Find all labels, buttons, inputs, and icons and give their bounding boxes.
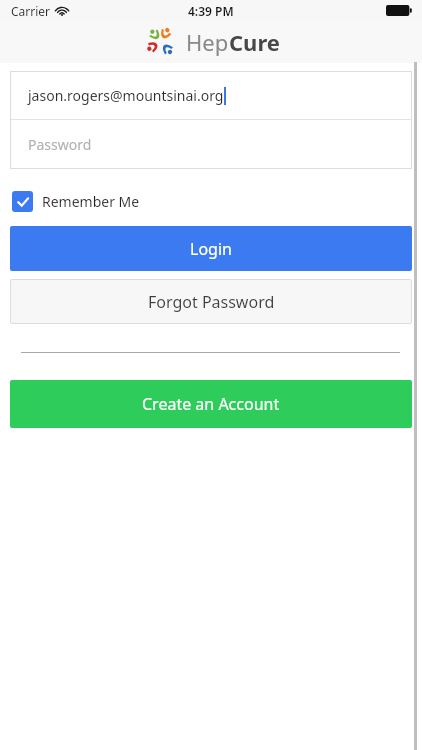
button[interactable]: Password [10,120,412,169]
button[interactable]: Forgot Password [10,279,412,324]
button[interactable]: Remember Me [12,189,150,214]
staticText: Create an Account [142,393,280,415]
staticText: Carrier [11,3,51,19]
staticText: jason.rogers@mountsinai.org [28,86,224,105]
staticText: Cure [229,27,280,57]
button[interactable]: Login [10,226,412,271]
button[interactable]: jason.rogers@mountsinai.org [10,71,412,119]
staticText: 4:39 PM [188,3,234,19]
staticText: Password [28,135,92,154]
button[interactable]: Create an Account [10,380,412,428]
staticText: Login [190,238,232,260]
staticText: Remember Me [42,192,140,211]
staticText: Hep [186,27,229,57]
staticText: Forgot Password [148,291,275,313]
